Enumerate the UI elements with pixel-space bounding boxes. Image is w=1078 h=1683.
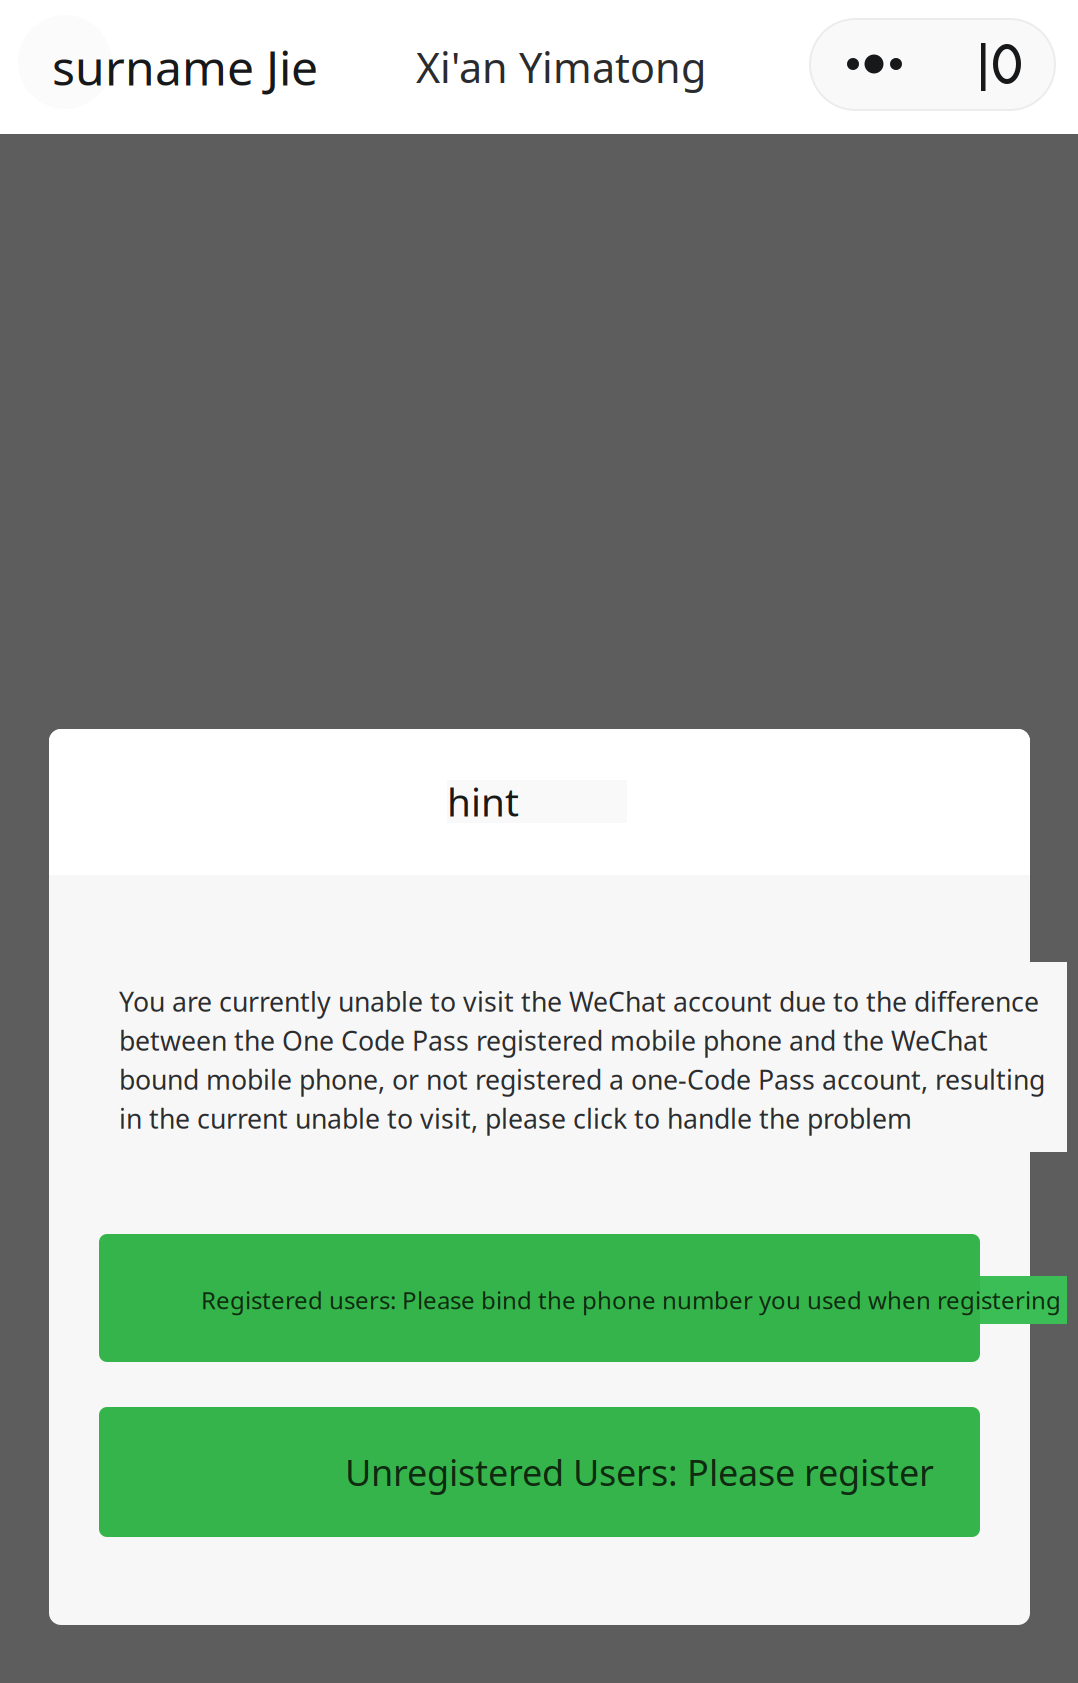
staticText: between the One Code Pass registered mob… — [119, 1023, 988, 1058]
button[interactable]: Menu and Close — [810, 19, 1055, 110]
staticText: Xi'an Yimatong — [416, 40, 706, 94]
staticText: in the current unable to visit, please c… — [119, 1101, 912, 1136]
button[interactable]: Registered users: Please bind the phone … — [99, 1234, 980, 1362]
staticText: Registered users: Please bind the phone … — [201, 1284, 1061, 1316]
staticText: surname Jie — [52, 35, 318, 99]
button[interactable]: Unregistered Users: Please register — [99, 1407, 980, 1537]
staticText: Unregistered Users: Please register — [345, 1448, 934, 1496]
staticText: bound mobile phone, or not registered a … — [119, 1062, 1045, 1097]
staticText: You are currently unable to visit the We… — [119, 984, 1039, 1019]
button[interactable]: surname Jie — [52, 0, 332, 134]
staticText: hint — [447, 776, 519, 827]
